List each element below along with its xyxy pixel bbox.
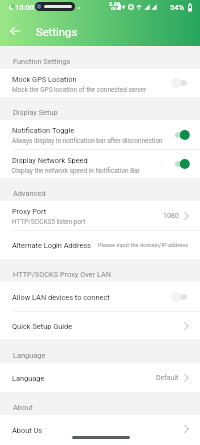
button[interactable]: Language [0,363,200,392]
button[interactable]: Proxy Port [0,201,200,230]
button[interactable]: Alternate Login Address [0,231,200,259]
button[interactable]: Allow LAN devices to connect [0,282,200,311]
staticText: Notification Toggle [12,126,75,135]
staticText: KB/s [111,7,119,11]
staticText: Mock GPS Location [12,75,77,84]
button[interactable]: Display Network Speed [0,150,200,178]
staticText: Display the network speed in Notificatio… [12,167,140,175]
staticText: HTTP/SOCKS5 listen port [12,218,86,226]
staticText: Default [156,374,179,382]
button[interactable]: Switch on [171,128,191,142]
button[interactable]: Notification Toggle [0,120,200,149]
staticText: Language [13,351,46,360]
staticText: 15:00 [15,3,35,12]
button[interactable]: About Us [0,415,200,443]
staticText: Display Setup [13,108,58,117]
staticText: Always display in notification bar after… [12,137,163,145]
staticText: Please input the domain/IP address [98,242,189,249]
button[interactable]: Switch on [171,157,191,171]
staticText: 54% [170,3,185,12]
staticText: Mock the GPS location of the connected s… [12,86,147,94]
staticText: Quick Setup Guide [12,322,73,331]
button[interactable]: Switch off [171,76,191,90]
staticText: Allow LAN devices to connect [12,293,110,302]
button[interactable]: Quick Setup Guide [0,312,200,339]
staticText: 2.66 [109,1,121,7]
button[interactable]: Switch off [171,290,191,304]
staticText: HTTP/SOCKS Proxy Over LAN [13,270,112,279]
staticText: Function Settings [13,57,71,66]
staticText: 1080 [163,212,179,220]
staticText: About Us [12,426,43,435]
button[interactable]: Back [2,18,28,44]
button[interactable]: Mock GPS Location [0,69,200,97]
staticText: Display Network Speed [12,156,88,165]
staticText: Language [12,374,45,383]
staticText: About [13,403,33,412]
staticText: Alternate Login Address [12,241,91,250]
staticText: Settings [36,26,78,39]
staticText: Proxy Port [12,207,47,216]
staticText: Advanced [13,189,46,198]
